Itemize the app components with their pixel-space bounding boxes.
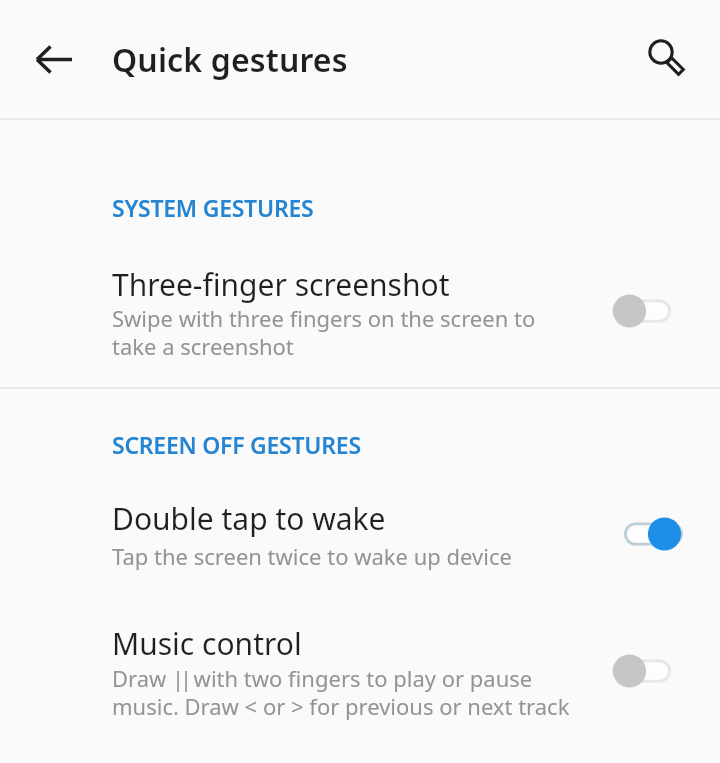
staticText: Music control bbox=[112, 623, 302, 664]
staticText: Tap the screen twice to wake up device bbox=[112, 541, 512, 571]
staticText: Three-finger screenshot bbox=[112, 264, 450, 305]
staticText: Double tap to wake bbox=[112, 498, 386, 539]
staticText: SCREEN OFF GESTURES bbox=[112, 429, 361, 460]
button[interactable]: Search bbox=[628, 20, 692, 84]
button[interactable]: Double tap to wake, on bbox=[600, 500, 700, 568]
staticText: SYSTEM GESTURES bbox=[112, 192, 314, 223]
staticText: Draw || with two fingers to play or paus… bbox=[112, 663, 570, 721]
button[interactable]: Navigate up bbox=[17, 23, 89, 95]
button[interactable]: Music control, off bbox=[600, 637, 700, 705]
button[interactable] bbox=[0, 486, 720, 582]
staticText: Quick gestures bbox=[112, 38, 348, 82]
button[interactable]: Three-finger screenshot, off bbox=[600, 277, 700, 345]
button[interactable] bbox=[0, 248, 720, 374]
staticText: Swipe with three fingers on the screen t… bbox=[112, 303, 536, 361]
button[interactable] bbox=[0, 610, 720, 736]
